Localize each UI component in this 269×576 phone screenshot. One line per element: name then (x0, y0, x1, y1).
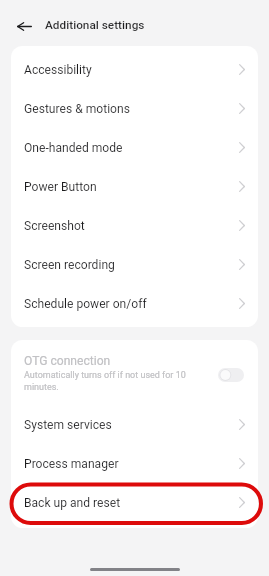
button[interactable]: Screenshot (11, 206, 258, 245)
staticText: Additional settings (45, 18, 145, 32)
staticText: One-handed mode (24, 141, 123, 155)
button[interactable]: Gestures & motions (11, 89, 258, 128)
button[interactable]: One-handed mode (11, 128, 258, 167)
staticText: Power Button (24, 180, 97, 194)
staticText: Automatically turns off if not used for … (24, 370, 204, 392)
staticText: Process manager (24, 457, 119, 471)
button[interactable]: Back up and reset (11, 483, 258, 522)
button[interactable]: Power Button (11, 167, 258, 206)
staticText: System services (24, 418, 112, 432)
button[interactable]: Process manager (11, 444, 258, 483)
button[interactable]: Screen recording (11, 245, 258, 284)
staticText: Screenshot (24, 219, 85, 233)
button[interactable]: Schedule power on/off (11, 284, 258, 323)
button[interactable]: OTG connection (11, 340, 258, 405)
staticText: Gestures & motions (24, 102, 130, 116)
staticText: OTG connection (24, 354, 111, 368)
button[interactable]: System services (11, 405, 258, 444)
staticText: Screen recording (24, 258, 115, 272)
button[interactable]: Accessibility (11, 50, 258, 89)
staticText: Back up and reset (24, 496, 121, 510)
staticText: Accessibility (24, 63, 92, 77)
staticText: Schedule power on/off (24, 297, 147, 311)
button[interactable]: Back (8, 10, 40, 42)
